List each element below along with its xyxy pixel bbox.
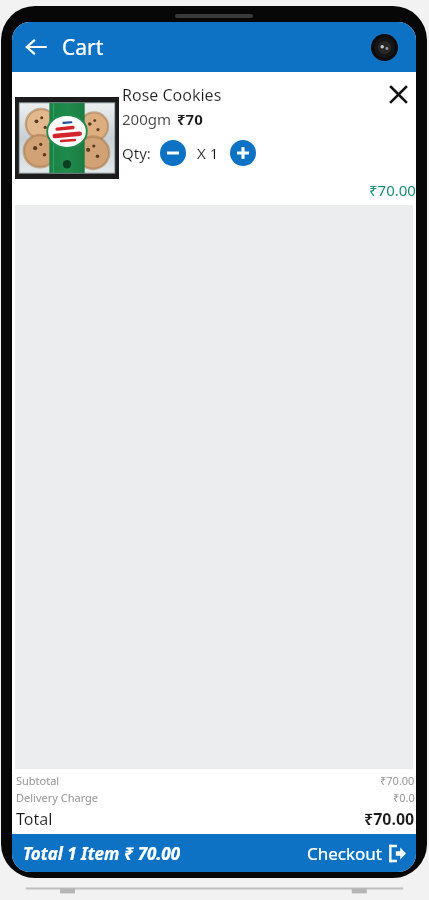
button[interactable]: Back	[12, 23, 60, 71]
staticText: Delivery Charge	[16, 790, 99, 805]
staticText: Qty:	[122, 143, 151, 163]
staticText: Total	[16, 808, 53, 830]
staticText: 200gm	[122, 109, 171, 129]
staticText: Total 1 Item ₹ 70.00	[23, 842, 181, 865]
staticText: X 1	[197, 143, 219, 163]
staticText: ₹70.00	[380, 773, 415, 788]
staticText: Checkout	[307, 842, 383, 865]
button[interactable]: Decrease quantity	[160, 140, 186, 166]
button[interactable]: Total 1 Item ₹ 70.00	[12, 834, 416, 872]
staticText: ₹0.0	[393, 790, 415, 805]
button[interactable]: Rose Cookies	[12, 72, 416, 205]
staticText: Rose Cookies	[122, 84, 222, 106]
staticText: Cart	[62, 33, 104, 62]
staticText: Subtotal	[16, 773, 60, 788]
button[interactable]: Increase quantity	[230, 140, 256, 166]
staticText: ₹70.00	[369, 180, 416, 200]
staticText: ₹70	[177, 109, 203, 129]
staticText: ₹70.00	[364, 808, 415, 830]
button[interactable]: Remove item	[380, 76, 416, 112]
